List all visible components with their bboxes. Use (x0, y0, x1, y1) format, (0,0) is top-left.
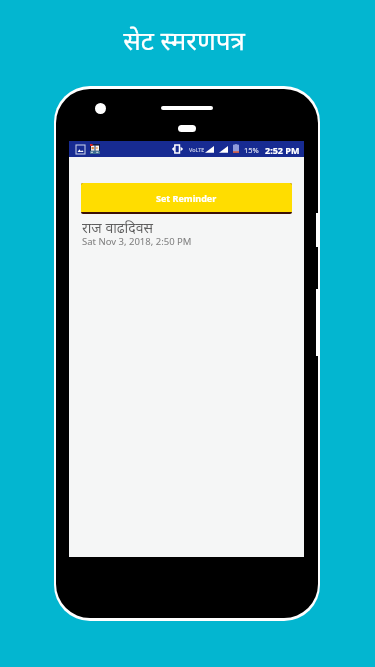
button[interactable]: Set Reminder (81, 183, 292, 214)
staticText: 15% (244, 145, 259, 155)
staticText: VoLTE (189, 146, 205, 153)
staticText: सेट स्मरणपत्र (123, 22, 245, 57)
staticText: Sat Nov 3, 2018, 2:50 PM (82, 235, 192, 248)
staticText: राज वाढदिवस (82, 218, 153, 237)
staticText: 2:52 PM (265, 144, 300, 156)
button[interactable]: राज वाढदिवस (69, 214, 304, 256)
staticText: Set Reminder (156, 192, 217, 204)
